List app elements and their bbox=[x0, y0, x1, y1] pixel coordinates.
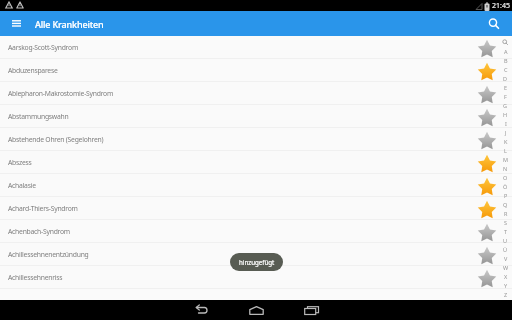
staticText: F bbox=[504, 93, 507, 100]
staticText: Achard-Thiers-Syndrom bbox=[8, 204, 78, 213]
button[interactable]: Ö bbox=[499, 182, 512, 191]
button[interactable] bbox=[303, 300, 319, 320]
button[interactable]: Achenbach-Syndrom bbox=[0, 220, 512, 243]
button[interactable]: Achalasie bbox=[0, 174, 512, 197]
button[interactable]: B bbox=[499, 56, 512, 65]
button[interactable]: Y bbox=[499, 281, 512, 290]
staticText: T bbox=[504, 228, 508, 235]
button[interactable]: K bbox=[499, 137, 512, 146]
staticText: E bbox=[504, 84, 508, 91]
staticText: Abstehende Ohren (Segelohren) bbox=[8, 135, 104, 144]
button[interactable]: R bbox=[499, 209, 512, 218]
button[interactable]: Q bbox=[499, 200, 512, 209]
staticText: Achillessehnenentzündung bbox=[8, 250, 89, 259]
button[interactable]: Z bbox=[499, 290, 512, 299]
staticText: hinzugefügt bbox=[239, 258, 275, 266]
staticText: P bbox=[504, 192, 508, 199]
button[interactable]: D bbox=[499, 74, 512, 83]
button[interactable]: X bbox=[499, 272, 512, 281]
button[interactable]: E bbox=[499, 83, 512, 92]
staticText: O bbox=[503, 174, 508, 181]
button[interactable]: C bbox=[499, 65, 512, 74]
button[interactable] bbox=[193, 300, 209, 320]
staticText: D bbox=[503, 75, 508, 82]
button[interactable] bbox=[477, 269, 497, 289]
button[interactable]: U bbox=[499, 236, 512, 245]
button[interactable]: L bbox=[499, 146, 512, 155]
button[interactable]: Ü bbox=[499, 245, 512, 254]
button[interactable] bbox=[477, 131, 497, 151]
staticText: G bbox=[503, 102, 508, 109]
button[interactable]: Abstammungswahn bbox=[0, 105, 512, 128]
staticText: U bbox=[503, 237, 508, 244]
button[interactable]: Aarskog-Scott-Syndrom bbox=[0, 36, 512, 59]
button[interactable] bbox=[0, 11, 32, 36]
button[interactable] bbox=[477, 62, 497, 82]
staticText: 21:45 bbox=[492, 1, 510, 11]
staticText: X bbox=[504, 273, 508, 280]
staticText: B bbox=[504, 57, 508, 64]
button[interactable] bbox=[477, 39, 497, 59]
staticText: Achalasie bbox=[8, 181, 36, 190]
button[interactable]: Achard-Thiers-Syndrom bbox=[0, 197, 512, 220]
button[interactable]: Ablepharon-Makrostomie-Syndrom bbox=[0, 82, 512, 105]
staticText: H bbox=[503, 111, 508, 118]
staticText: C bbox=[504, 66, 508, 73]
button[interactable] bbox=[477, 177, 497, 197]
button[interactable] bbox=[477, 85, 497, 105]
button[interactable]: Abduzensparese bbox=[0, 59, 512, 82]
button[interactable]: S bbox=[499, 218, 512, 227]
staticText: Z bbox=[504, 291, 508, 298]
staticText: L bbox=[504, 147, 507, 154]
button[interactable]: H bbox=[499, 110, 512, 119]
button[interactable] bbox=[477, 154, 497, 174]
button[interactable]: W bbox=[499, 263, 512, 272]
button[interactable] bbox=[477, 200, 497, 220]
button[interactable]: F bbox=[499, 92, 512, 101]
button[interactable] bbox=[248, 300, 264, 320]
button[interactable]: Abszess bbox=[0, 151, 512, 174]
button[interactable]: G bbox=[499, 101, 512, 110]
button[interactable] bbox=[480, 11, 508, 36]
button[interactable]: Achillessehnenriss bbox=[0, 266, 512, 289]
staticText: Abduzensparese bbox=[8, 66, 58, 75]
button[interactable]: Achillessehnenentzündung bbox=[0, 243, 512, 266]
staticText: Achenbach-Syndrom bbox=[8, 227, 70, 236]
staticText: S bbox=[504, 219, 508, 226]
staticText: Q bbox=[503, 201, 508, 208]
button[interactable]: P bbox=[499, 191, 512, 200]
staticText: N bbox=[503, 165, 508, 172]
staticText: W bbox=[503, 264, 509, 271]
button[interactable] bbox=[477, 108, 497, 128]
staticText: Abszess bbox=[8, 158, 32, 167]
staticText: Ö bbox=[503, 183, 508, 190]
staticText: I bbox=[505, 120, 507, 127]
button[interactable]: Abstehende Ohren (Segelohren) bbox=[0, 128, 512, 151]
button[interactable]: M bbox=[499, 155, 512, 164]
staticText: M bbox=[503, 156, 508, 163]
button[interactable]: V bbox=[499, 254, 512, 263]
staticText: Achillessehnenriss bbox=[8, 273, 63, 282]
button[interactable] bbox=[477, 223, 497, 243]
button[interactable]: A bbox=[499, 47, 512, 56]
button[interactable]: I bbox=[499, 119, 512, 128]
staticText: A bbox=[504, 48, 508, 55]
staticText: J bbox=[505, 129, 507, 136]
staticText: K bbox=[504, 138, 508, 145]
button[interactable] bbox=[477, 246, 497, 266]
button[interactable]: J bbox=[499, 128, 512, 137]
staticText: R bbox=[504, 210, 508, 217]
staticText: V bbox=[504, 255, 508, 262]
staticText: Alle Krankheiten bbox=[35, 18, 104, 30]
button[interactable]: T bbox=[499, 227, 512, 236]
button[interactable]: N bbox=[499, 164, 512, 173]
button[interactable]: O bbox=[499, 173, 512, 182]
staticText: Ü bbox=[503, 246, 508, 253]
staticText: Ablepharon-Makrostomie-Syndrom bbox=[8, 89, 114, 98]
staticText: Aarskog-Scott-Syndrom bbox=[8, 43, 78, 52]
staticText: Abstammungswahn bbox=[8, 112, 69, 121]
staticText: Y bbox=[504, 282, 508, 289]
